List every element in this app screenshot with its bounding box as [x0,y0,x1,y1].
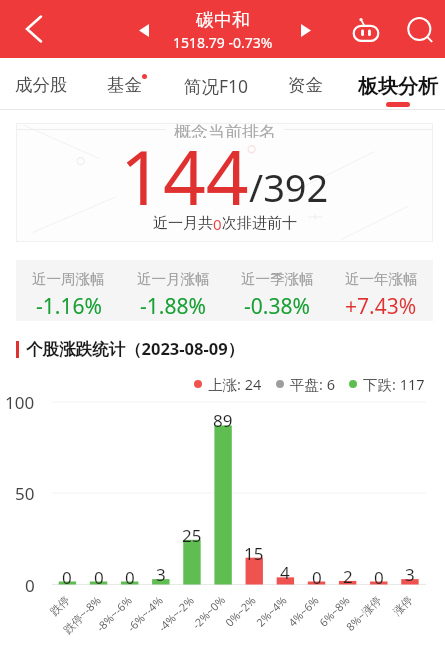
staticText: -8%~-6% [93,592,135,635]
staticText: -4%~-2% [155,592,197,635]
staticText: 近一年涨幅 [345,270,418,288]
staticText: 0 [125,566,135,589]
staticText: 0 [62,566,72,589]
staticText: 0 [213,214,222,234]
button[interactable]: Back [12,9,56,49]
staticText: 0 [312,566,322,589]
staticText: 涨停 [390,593,415,618]
staticText: 平盘: 6 [290,374,335,394]
button[interactable]: AI assistant [346,10,386,50]
staticText: 简况F10 [184,74,249,98]
staticText: 成分股 [15,74,68,96]
staticText: 跌停~-8% [60,592,104,637]
staticText: 15 [244,542,264,565]
staticText: 3 [405,563,415,586]
staticText: /392 [249,161,329,213]
staticText: 89 [213,409,233,432]
staticText: -6%~-4% [124,592,166,635]
staticText: 碳中和 [196,9,250,32]
staticText: 2%~4% [253,592,290,630]
button[interactable]: 基金 [78,58,170,109]
staticText: 100 [5,391,35,413]
staticText: 下跌: 117 [363,374,425,394]
staticText: -2%~0% [189,592,228,632]
button[interactable]: 近一季涨幅 [225,260,329,321]
staticText: 跌停 [47,593,72,618]
staticText: -1.88% [140,292,206,321]
staticText: 4 [280,561,290,584]
staticText: 个股涨跌统计（2023-08-09） [26,337,245,360]
button[interactable]: 简况F10 [170,58,262,109]
staticText: 2 [343,565,353,588]
staticText: 近一月涨幅 [137,270,210,288]
button[interactable]: 板块分析 [352,58,444,109]
button[interactable]: 平盘: 6 [276,374,335,394]
button[interactable]: Previous sector [126,13,162,47]
button[interactable]: 近一月涨幅 [121,260,225,321]
staticText: 资金 [288,74,323,96]
staticText: 0 [94,566,104,589]
button[interactable]: 资金 [259,58,351,109]
staticText: -1.16% [36,292,102,321]
staticText: 144 [120,125,249,227]
staticText: +7.43% [345,292,417,321]
button[interactable]: 近一周涨幅 [16,260,121,321]
button[interactable]: 下跌: 117 [349,374,425,394]
staticText: 6%~8% [316,592,353,630]
button[interactable]: Search [401,12,441,52]
staticText: 上涨: 24 [208,374,262,394]
staticText: 基金 [107,74,142,96]
staticText: 0 [374,566,384,589]
staticText: 近一周涨幅 [32,270,105,288]
staticText: 4%~6% [285,592,322,630]
button[interactable]: 成分股 [0,58,87,109]
staticText: 1518.79 -0.73% [173,33,273,52]
button[interactable]: 近一年涨幅 [329,260,433,321]
staticText: 0%~2% [222,592,259,630]
staticText: 概念当前排名 [174,122,276,138]
staticText: 25 [182,524,202,547]
staticText: 近一月共 [153,214,213,233]
button[interactable]: 上涨: 24 [194,374,262,394]
staticText: 近一季涨幅 [241,270,314,288]
staticText: 3 [156,563,166,586]
staticText: 板块分析 [358,74,438,99]
staticText: 0 [25,574,35,596]
staticText: 次排进前十 [222,214,297,233]
staticText: 50 [15,482,35,504]
staticText: -0.38% [244,292,310,321]
staticText: 8%~涨停 [343,592,384,634]
button[interactable]: Next sector [288,13,324,47]
